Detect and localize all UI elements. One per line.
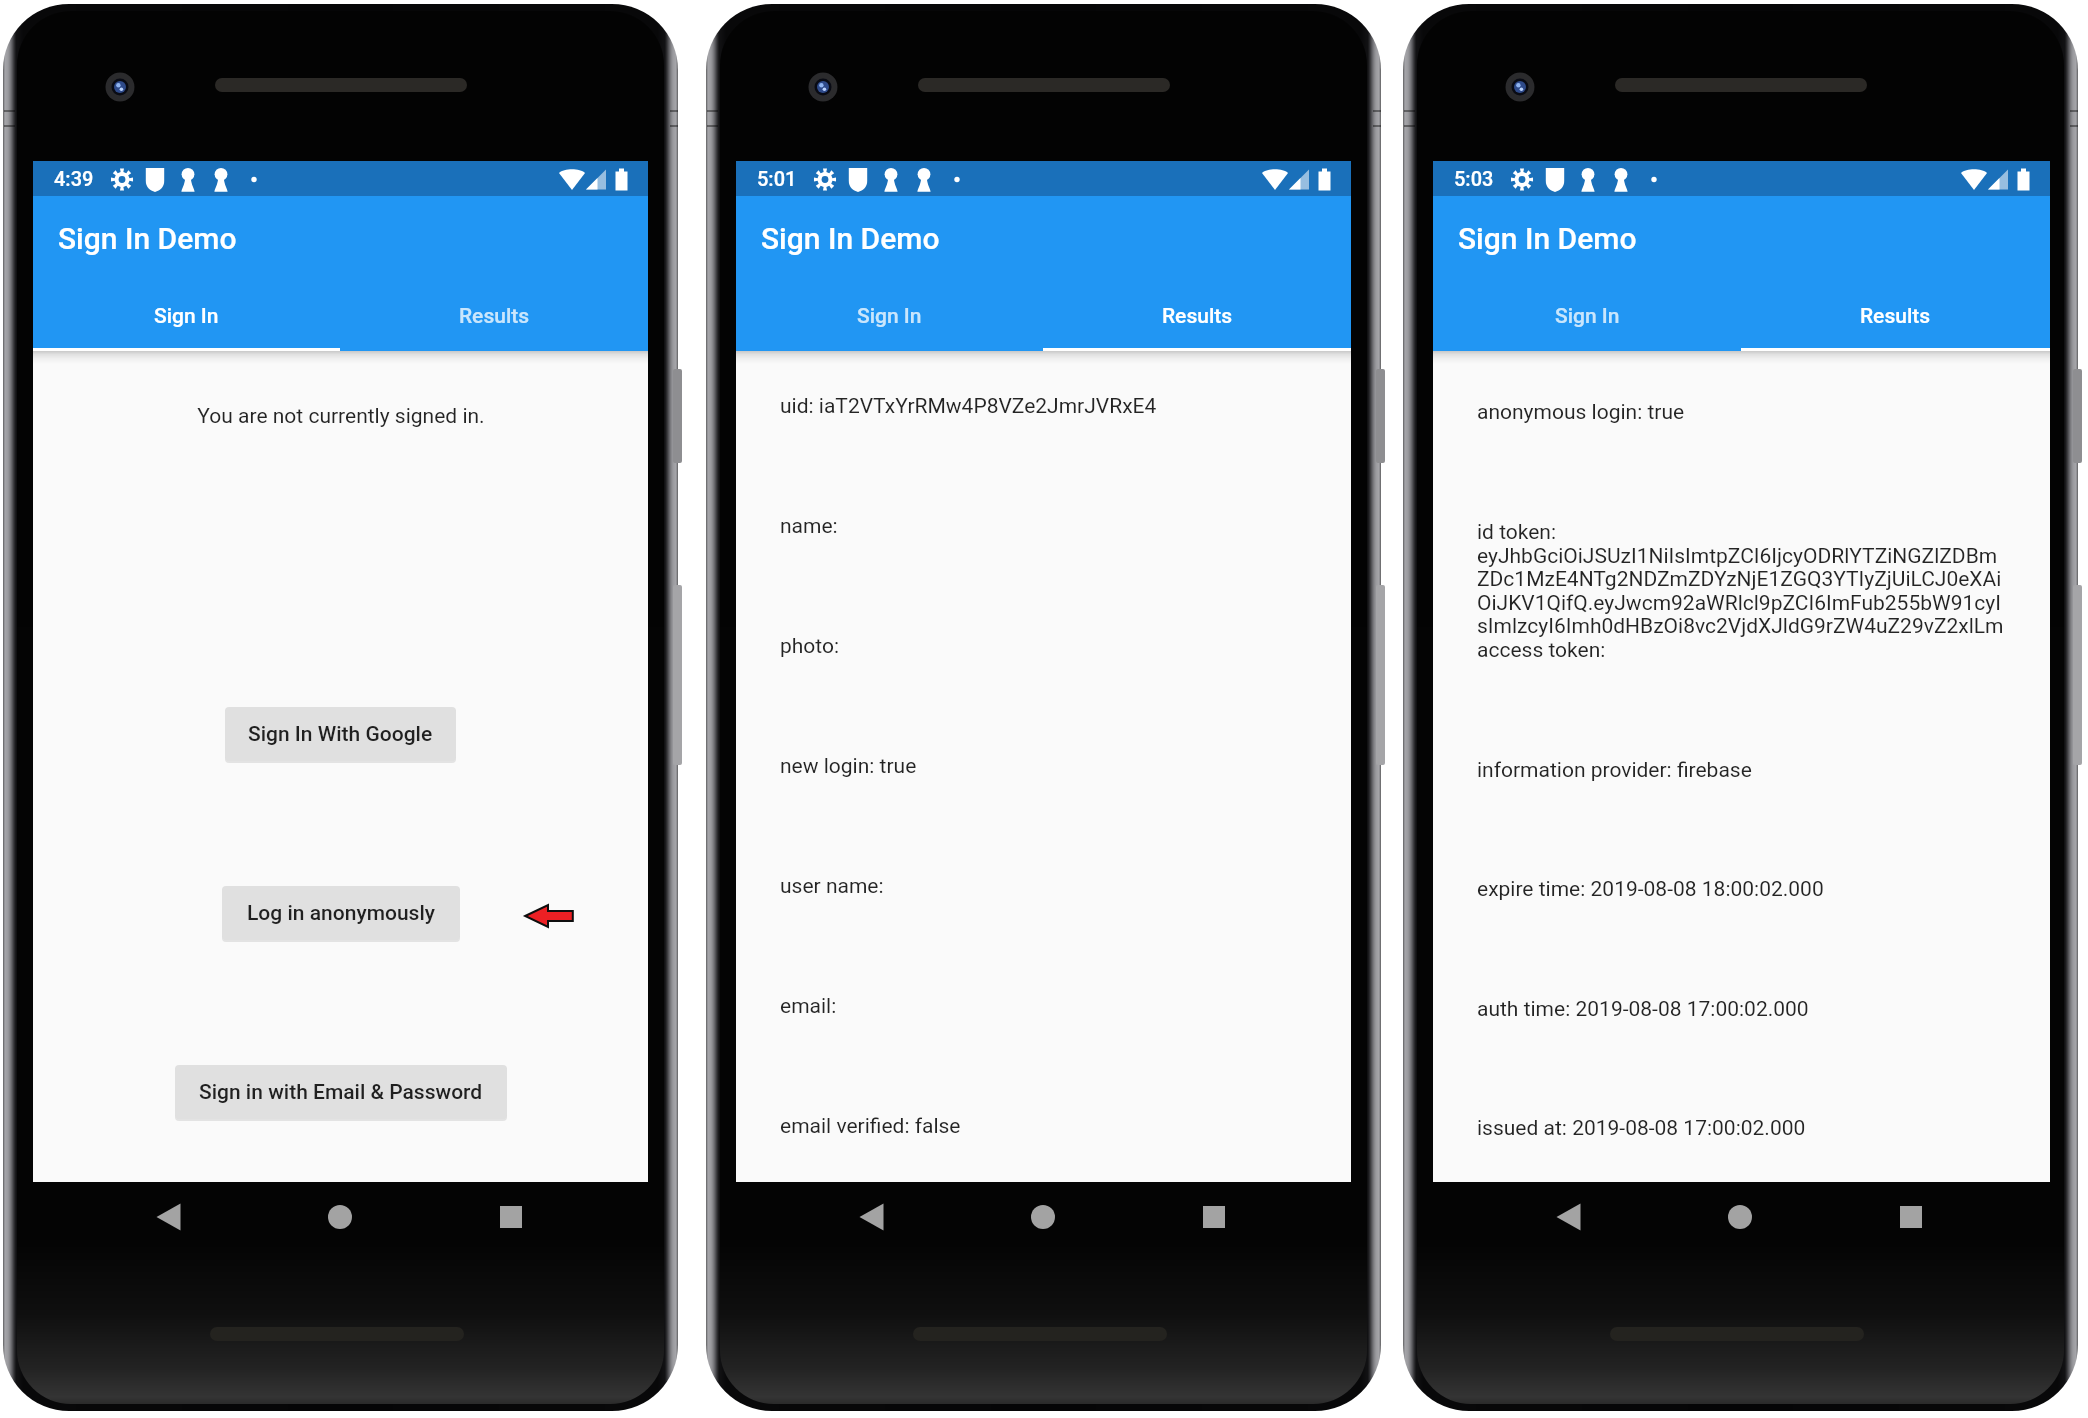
button[interactable]: Sign In <box>1433 296 1741 348</box>
staticText: email verified: false <box>780 1114 961 1139</box>
staticText: Results <box>1162 304 1233 329</box>
staticText: Results <box>459 304 530 329</box>
staticText: uid: iaT2VTxYrRMw4P8VZe2JmrJVRxE4 <box>780 394 1157 419</box>
staticText: id token: <box>1477 520 1557 545</box>
staticText: Sign In Demo <box>58 221 237 256</box>
button[interactable]: Sign In With Google <box>225 707 456 761</box>
button[interactable]: Sign in with Email & Password <box>175 1065 507 1119</box>
button[interactable]: Results <box>1043 296 1351 348</box>
staticText: OiJKV1QifQ.eyJwcm92aWRlcl9pZCI6ImFub255b… <box>1477 591 2001 616</box>
button[interactable]: Back <box>1543 1191 1595 1243</box>
button[interactable]: Back <box>143 1191 195 1243</box>
staticText: email: <box>780 994 837 1019</box>
staticText: new login: true <box>780 754 917 779</box>
staticText: Sign In Demo <box>1458 221 1637 256</box>
staticText: sImlzcyI6Imh0dHBzOi8vc2VjdXJldG9rZW4uZ29… <box>1477 614 2004 639</box>
staticText: photo: <box>780 634 840 659</box>
staticText: Sign In <box>857 304 922 329</box>
staticText: issued at: 2019-08-08 17:00:02.000 <box>1477 1116 1806 1141</box>
button[interactable]: Recent apps <box>1188 1191 1240 1243</box>
staticText: Sign In <box>154 304 219 329</box>
button[interactable]: Home <box>314 1191 366 1243</box>
staticText: eyJhbGciOiJSUzI1NiIsImtpZCI6IjcyODRlYTZi… <box>1477 544 1998 569</box>
staticText: Sign In Demo <box>761 221 940 256</box>
button[interactable]: Home <box>1017 1191 1069 1243</box>
button[interactable]: Sign In <box>736 296 1043 348</box>
button[interactable]: Sign In <box>33 296 340 348</box>
staticText: 5:03 <box>1454 167 1494 190</box>
staticText: Sign In <box>1555 304 1620 329</box>
staticText: Results <box>1860 304 1931 329</box>
staticText: information provider: firebase <box>1477 758 1752 783</box>
staticText: ZDc1MzE4NTg2NDZmZDYzNjE1ZGQ3YTIyZjUiLCJ0… <box>1477 567 2002 592</box>
button[interactable]: Log in anonymously <box>222 886 460 940</box>
staticText: access token: <box>1477 638 1606 663</box>
button[interactable]: Results <box>340 296 648 348</box>
staticText: Sign in with Email & Password <box>199 1080 483 1105</box>
staticText: 4:39 <box>54 167 94 190</box>
button[interactable]: Home <box>1714 1191 1766 1243</box>
button[interactable]: Recent apps <box>485 1191 537 1243</box>
button[interactable]: Back <box>846 1191 898 1243</box>
staticText: user name: <box>780 874 884 899</box>
button[interactable]: Recent apps <box>1885 1191 1937 1243</box>
staticText: expire time: 2019-08-08 18:00:02.000 <box>1477 877 1824 902</box>
staticText: Sign In With Google <box>248 722 433 747</box>
staticText: You are not currently signed in. <box>197 404 485 429</box>
staticText: auth time: 2019-08-08 17:00:02.000 <box>1477 997 1809 1022</box>
staticText: anonymous login: true <box>1477 400 1685 425</box>
staticText: 5:01 <box>757 167 797 190</box>
button[interactable]: Results <box>1741 296 2050 348</box>
staticText: name: <box>780 514 838 539</box>
staticText: Log in anonymously <box>247 901 436 926</box>
